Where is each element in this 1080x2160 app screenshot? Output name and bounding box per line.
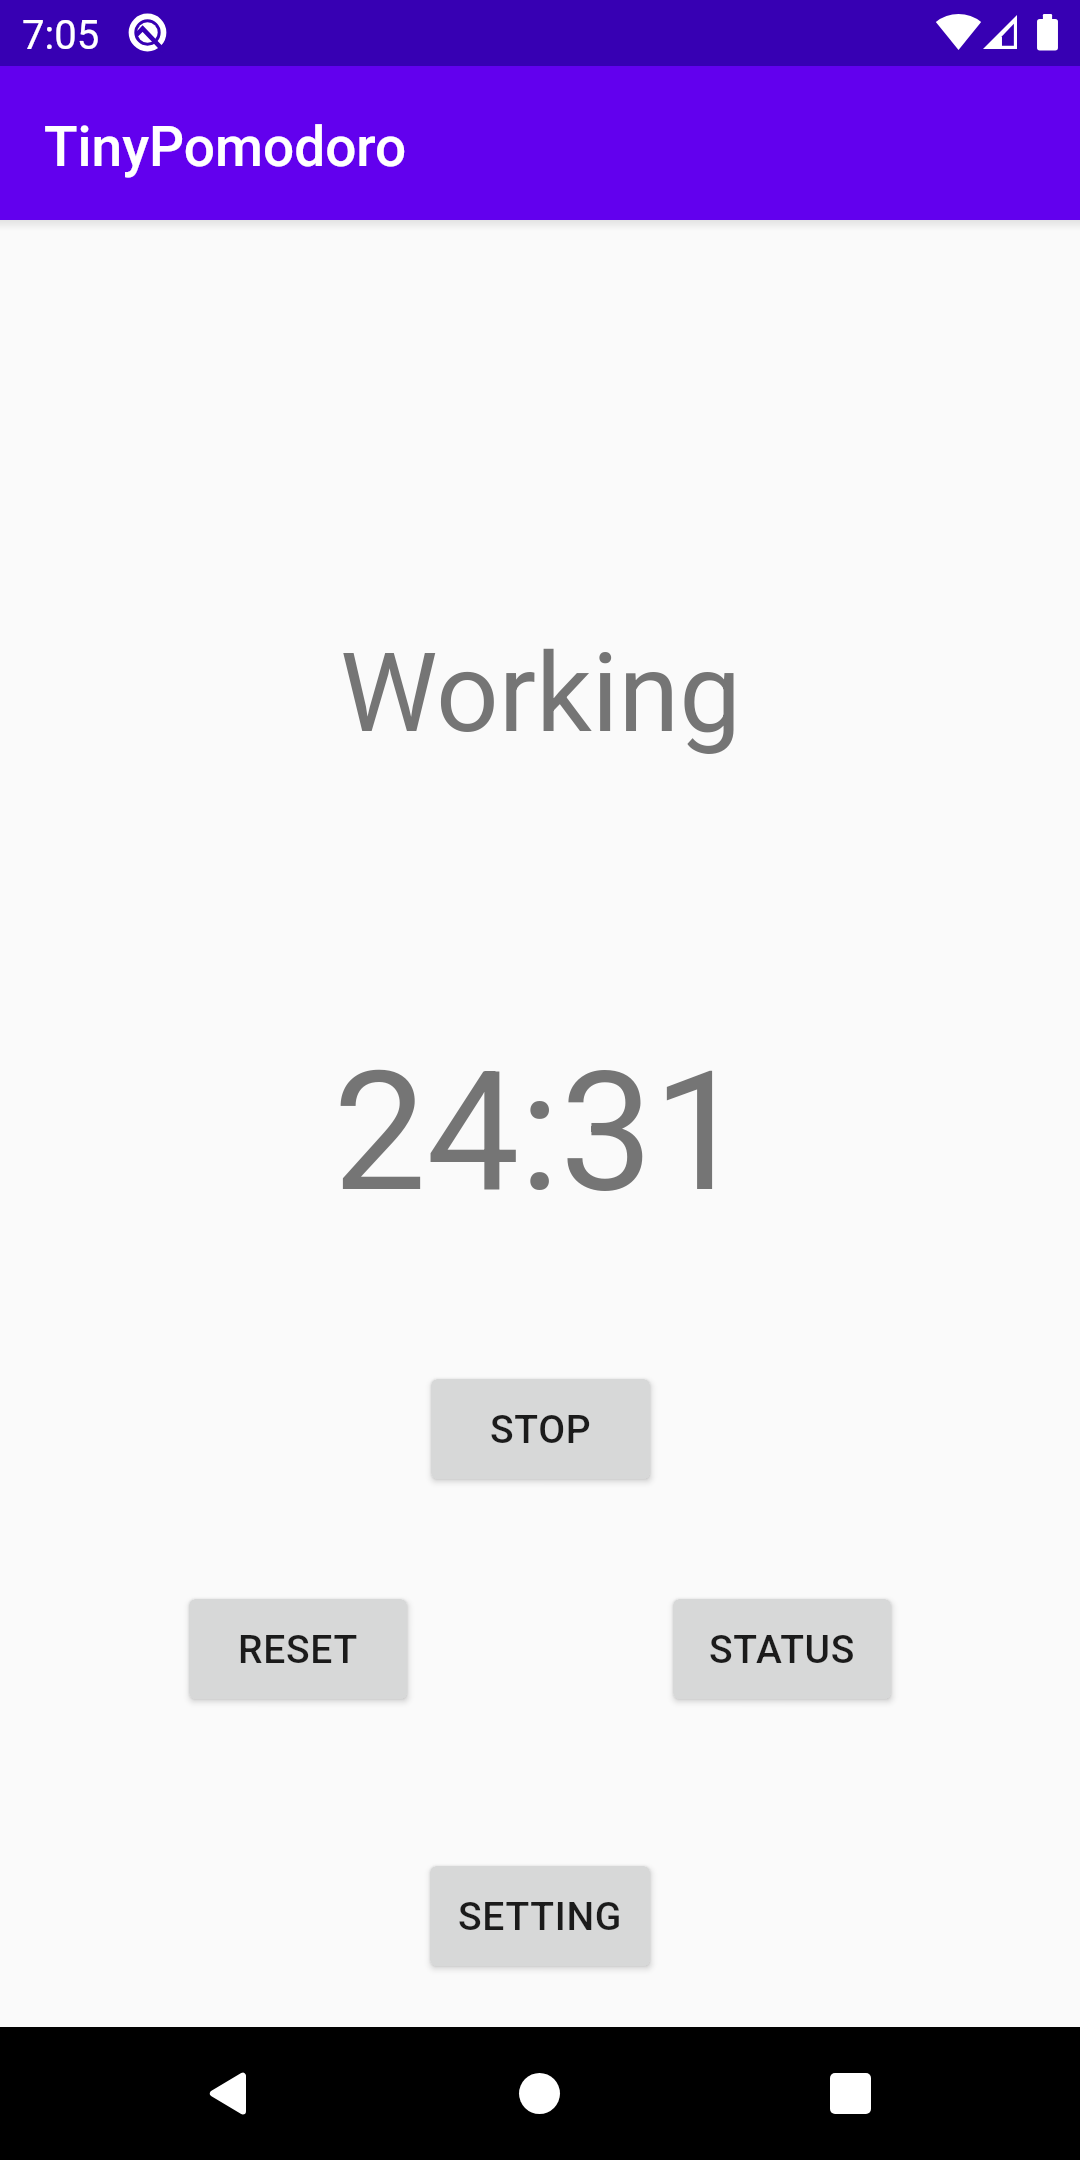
staticText: Working — [340, 629, 741, 758]
button[interactable]: Back — [160, 2027, 293, 2160]
button[interactable]: Recents — [784, 2027, 917, 2160]
button[interactable]: SETTING — [430, 1866, 650, 1966]
staticText: STATUS — [709, 1627, 856, 1673]
button[interactable]: Home — [473, 2027, 606, 2160]
staticText: RESET — [238, 1627, 358, 1673]
button[interactable]: STOP — [431, 1379, 650, 1479]
button[interactable]: RESET — [189, 1599, 407, 1699]
staticText: 7:05 — [22, 12, 100, 59]
staticText: 24:31 — [333, 1035, 747, 1230]
button[interactable]: STATUS — [673, 1599, 891, 1699]
staticText: SETTING — [458, 1894, 623, 1940]
staticText: STOP — [490, 1407, 592, 1453]
staticText: TinyPomodoro — [44, 115, 407, 179]
